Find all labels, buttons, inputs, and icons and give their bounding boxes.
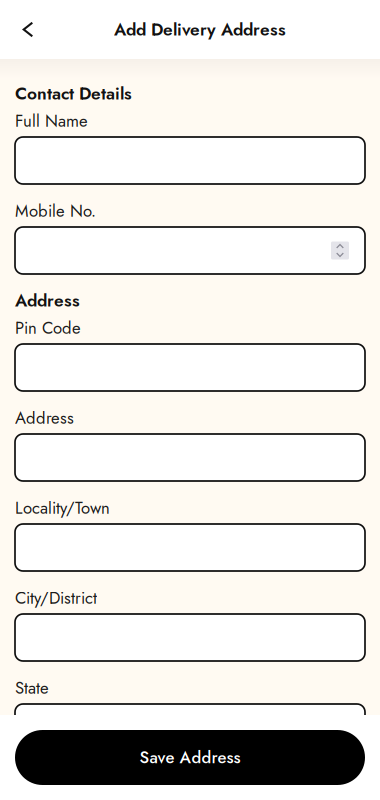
button[interactable]: Full Name — [15, 137, 365, 184]
staticText: Full Name — [15, 109, 88, 133]
button[interactable]: City/District — [15, 614, 365, 661]
staticText: Contact Details — [15, 81, 132, 106]
button[interactable]: Pin Code — [15, 344, 365, 391]
button[interactable]: Back — [0, 0, 56, 59]
staticText: Mobile No. — [15, 199, 96, 223]
staticText: Pin Code — [15, 316, 81, 340]
button[interactable]: Locality/Town — [15, 524, 365, 571]
staticText: Locality/Town — [15, 496, 110, 520]
staticText: Address — [15, 406, 74, 430]
button[interactable]: Save Address — [15, 730, 365, 785]
staticText: State — [15, 676, 49, 700]
staticText: Address — [15, 288, 80, 313]
staticText: Add Delivery Address — [114, 17, 286, 42]
staticText: Save Address — [139, 745, 240, 770]
button[interactable]: Address — [15, 434, 365, 481]
button[interactable]: State — [15, 704, 365, 751]
staticText: City/District — [15, 586, 97, 610]
button[interactable]: Mobile No. — [15, 227, 365, 274]
